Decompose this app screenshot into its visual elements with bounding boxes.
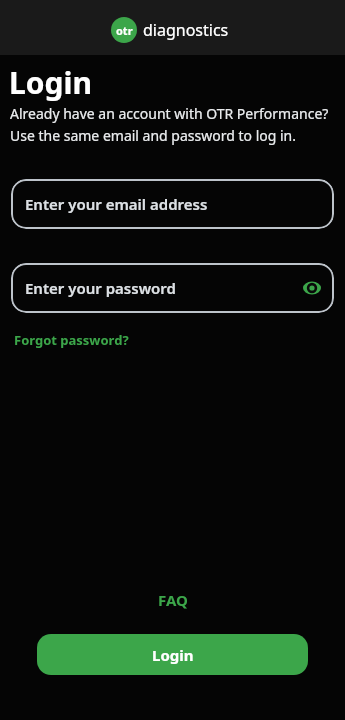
button[interactable]: Enter your password bbox=[11, 263, 334, 313]
button[interactable]: Enter your email address bbox=[11, 179, 334, 229]
staticText: Enter your email address bbox=[25, 194, 208, 214]
button[interactable]: FAQ bbox=[158, 590, 188, 610]
button[interactable] bbox=[301, 277, 323, 299]
button[interactable]: Forgot password? bbox=[14, 331, 129, 349]
staticText: otr bbox=[116, 23, 133, 38]
button[interactable]: Login bbox=[37, 634, 308, 675]
staticText: diagnostics bbox=[143, 19, 229, 41]
staticText: Login bbox=[152, 645, 194, 665]
staticText: Enter your password bbox=[25, 278, 176, 298]
staticText: Login bbox=[9, 62, 92, 103]
staticText: Already have an account with OTR Perform… bbox=[10, 104, 333, 145]
